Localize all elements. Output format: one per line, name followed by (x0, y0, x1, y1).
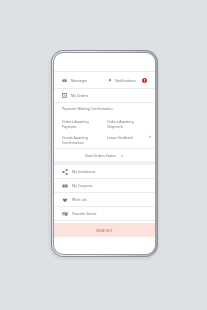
staticText: Payment Waiting Confirmation (62, 106, 113, 111)
staticText: Orders Awaiting Shipment (107, 119, 134, 129)
staticText: Goods Awaiting Confirmation (62, 135, 88, 145)
button[interactable]: View Orders Status (54, 149, 155, 161)
button[interactable]: Notifications (104, 72, 155, 88)
staticText: My Coupons (72, 183, 93, 188)
staticText: Leave Feedback (107, 135, 134, 140)
staticText: Favorite Stores (72, 211, 97, 216)
button[interactable]: Wish List (54, 193, 155, 206)
button[interactable]: Favorite Stores (54, 207, 155, 220)
staticText: SIGN OUT (96, 228, 113, 233)
button[interactable]: Goods Awaiting Confirmation (54, 135, 104, 145)
button[interactable]: My Invitations (54, 165, 155, 178)
button[interactable]: Orders Awaiting Payment (54, 119, 104, 129)
button[interactable]: Leave Feedback (104, 135, 155, 140)
button[interactable]: Messages (54, 72, 104, 88)
staticText: Wish List (72, 197, 87, 202)
staticText: Messages (71, 78, 88, 83)
staticText: My Orders (71, 93, 89, 98)
button[interactable]: My Coupons (54, 179, 155, 192)
staticText: View Orders Status (85, 153, 117, 158)
staticText: Notifications (115, 78, 136, 83)
button[interactable]: My Orders (54, 89, 155, 102)
staticText: My Invitations (72, 169, 96, 174)
button[interactable]: Orders Awaiting Shipment (104, 119, 155, 129)
button[interactable]: SIGN OUT (54, 223, 155, 237)
staticText: Orders Awaiting Payment (62, 119, 89, 129)
staticText: 1 (144, 79, 146, 83)
